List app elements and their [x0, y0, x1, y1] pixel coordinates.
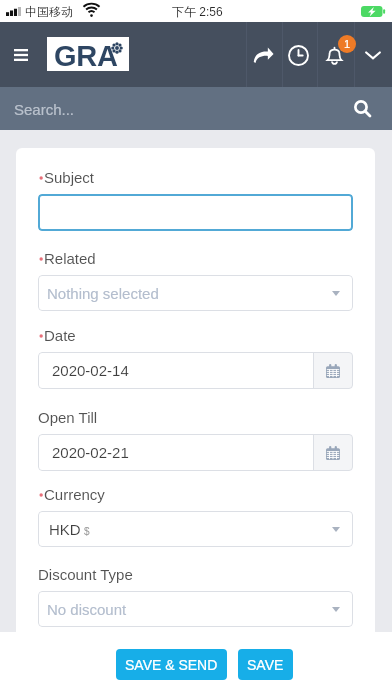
button[interactable]: No discount [38, 591, 353, 627]
button[interactable]: Menu [3, 37, 39, 73]
button[interactable]: Nothing selected [38, 275, 353, 311]
button[interactable]: SAVE & SEND [116, 649, 227, 680]
button[interactable]: More [355, 37, 391, 73]
staticText: 2020-02-14 [52, 362, 129, 379]
staticText: Discount Type [38, 566, 133, 583]
button[interactable]: HKD [38, 511, 353, 547]
staticText: Search... [14, 101, 75, 118]
button[interactable]: Timer [280, 37, 316, 73]
staticText: SAVE & SEND [125, 657, 218, 673]
button[interactable]: Search... [0, 87, 392, 130]
staticText: 1 [344, 38, 351, 50]
staticText: HKD [49, 521, 81, 538]
staticText: SAVE [247, 657, 284, 673]
staticText: $ [84, 526, 90, 537]
staticText: Currency [44, 486, 105, 503]
button[interactable]: 2020-02-14 [52, 352, 313, 389]
staticText: 中国移动 [25, 4, 73, 19]
button[interactable]: 2020-02-21 [52, 434, 313, 471]
button[interactable]: Notifications [316, 37, 352, 73]
button[interactable] [38, 194, 353, 231]
staticText: Date [44, 327, 76, 344]
staticText: Subject [44, 169, 95, 186]
staticText: Related [44, 250, 96, 267]
staticText: GRA [54, 40, 118, 72]
button[interactable]: Pick date [313, 352, 353, 389]
staticText: Open Till [38, 409, 98, 426]
staticText: No discount [47, 601, 127, 618]
button[interactable]: Share [245, 37, 281, 73]
button[interactable]: SAVE [238, 649, 293, 680]
staticText: Nothing selected [47, 285, 159, 302]
staticText: 2020-02-21 [52, 444, 129, 461]
button[interactable]: GRA logo [47, 37, 129, 71]
staticText: 下午 2:56 [172, 4, 223, 19]
button[interactable]: Pick date [313, 434, 353, 471]
